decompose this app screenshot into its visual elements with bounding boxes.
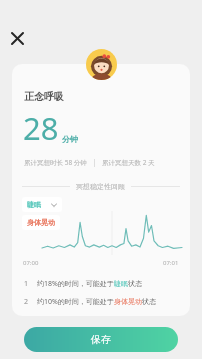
staticText: 状态 bbox=[128, 279, 142, 288]
staticText: 07:00 bbox=[23, 259, 39, 267]
staticText: 状态 bbox=[142, 297, 156, 306]
staticText: 身体晃动 bbox=[27, 218, 55, 227]
staticText: 07:01 bbox=[163, 259, 179, 267]
staticText: 1 bbox=[24, 279, 29, 289]
staticText: 约10%的时间，可能处于 bbox=[37, 297, 114, 307]
button[interactable]: Close bbox=[2, 23, 32, 53]
staticText: 正念呼吸 bbox=[24, 90, 64, 103]
staticText: 约18%的时间，可能处于 bbox=[37, 279, 114, 289]
staticText: 保存 bbox=[91, 333, 111, 346]
button[interactable]: 睫眠 bbox=[22, 197, 62, 212]
staticText: 身体晃动 bbox=[114, 297, 142, 306]
button[interactable]: 保存 bbox=[24, 327, 178, 352]
staticText: 28 bbox=[23, 107, 59, 149]
staticText: 2 bbox=[24, 297, 29, 307]
staticText: 睫眠 bbox=[27, 200, 41, 209]
staticText: 累计冥想天数 2 天 bbox=[102, 158, 155, 167]
staticText: 分钟 bbox=[62, 134, 78, 144]
staticText: 累计冥想时长 58 分钟 bbox=[24, 158, 87, 167]
staticText: 冥想稳定性回顾 bbox=[76, 182, 125, 191]
staticText: 睫眠 bbox=[114, 279, 128, 288]
